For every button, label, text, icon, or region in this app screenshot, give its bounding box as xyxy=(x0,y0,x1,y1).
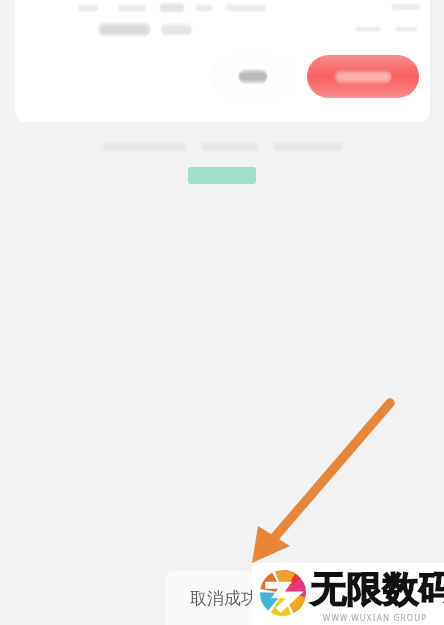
button[interactable] xyxy=(188,167,256,184)
button[interactable]: 取消成功 xyxy=(166,571,444,625)
staticText: 取消成功 xyxy=(190,588,258,609)
staticText: 无限数码 xyxy=(310,567,444,612)
button[interactable] xyxy=(307,55,419,98)
button[interactable] xyxy=(210,55,296,98)
button[interactable] xyxy=(15,0,430,122)
other: Pointer arrow xyxy=(0,0,444,625)
other: Wuxian Group watermark xyxy=(252,563,444,625)
staticText: WWW.WUXIAN GROUP xyxy=(310,612,440,623)
